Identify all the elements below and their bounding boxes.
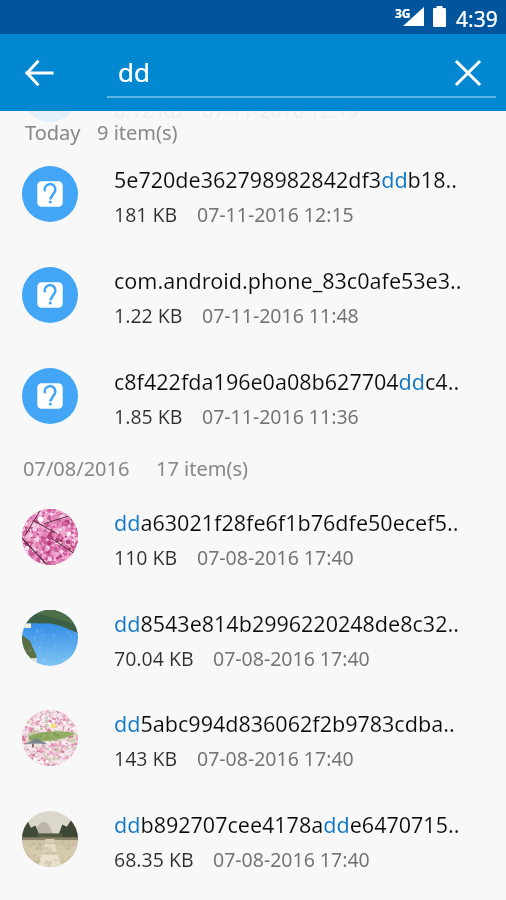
staticText: ddb892707cee4178adde6470715..	[114, 810, 506, 839]
staticText: 70.04 KB	[114, 645, 194, 672]
staticText: 17 item(s)	[156, 455, 249, 482]
staticText: 110 KB	[114, 544, 178, 571]
staticText: dd	[118, 54, 150, 89]
staticText: 07-08-2016 17:40	[197, 544, 354, 571]
staticText: 07-08-2016 17:40	[197, 745, 354, 772]
staticText: 07-11-2016 11:36	[202, 403, 359, 430]
button[interactable]: Clear search	[443, 48, 493, 98]
staticText: 9 item(s)	[97, 119, 178, 146]
staticText: 07-08-2016 17:40	[213, 846, 370, 873]
staticText: dd8543e814b2996220248de8c32..	[114, 609, 506, 638]
button[interactable]: Back	[12, 46, 66, 100]
staticText: dda63021f28fe6f1b76dfe50ecef5..	[114, 508, 506, 537]
button[interactable]: dda63021f28fe6f1b76dfe50ecef5..	[0, 493, 506, 593]
staticText: com.android.phone_83c0afe53e3..	[114, 266, 506, 295]
staticText: Today	[25, 119, 81, 146]
staticText: 07-11-2016 11:48	[202, 302, 359, 329]
staticText: 1.85 KB	[114, 403, 183, 430]
staticText: 8.12 KB	[114, 97, 183, 124]
staticText: 68.35 KB	[114, 846, 194, 873]
staticText: 07/08/2016	[23, 455, 130, 482]
button[interactable]: c8f422fda196e0a08b627704ddc4..	[0, 352, 506, 452]
staticText: 07-11-2016 12:15	[197, 201, 354, 228]
staticText: 4:39	[456, 5, 498, 34]
staticText: 181 KB	[114, 201, 178, 228]
button[interactable]: 5e720de362798982842df3ddb18..	[0, 150, 506, 250]
staticText: 07-11-2016 12:19	[202, 97, 359, 124]
button[interactable]: dd5abc994d836062f2b9783cdba..	[0, 694, 506, 794]
staticText: 1.22 KB	[114, 302, 183, 329]
button[interactable]: ddb892707cee4178adde6470715..	[0, 795, 506, 895]
staticText: 5e720de362798982842df3ddb18..	[114, 165, 506, 194]
staticText: c8f422fda196e0a08b627704ddc4..	[114, 367, 506, 396]
staticText: 07-08-2016 17:40	[213, 645, 370, 672]
button[interactable]: dd8543e814b2996220248de8c32..	[0, 594, 506, 694]
staticText: 143 KB	[114, 745, 178, 772]
staticText: dd5abc994d836062f2b9783cdba..	[114, 709, 506, 738]
button[interactable]: com.android.phone_83c0afe53e3..	[0, 251, 506, 351]
staticText: 3G	[395, 5, 411, 21]
